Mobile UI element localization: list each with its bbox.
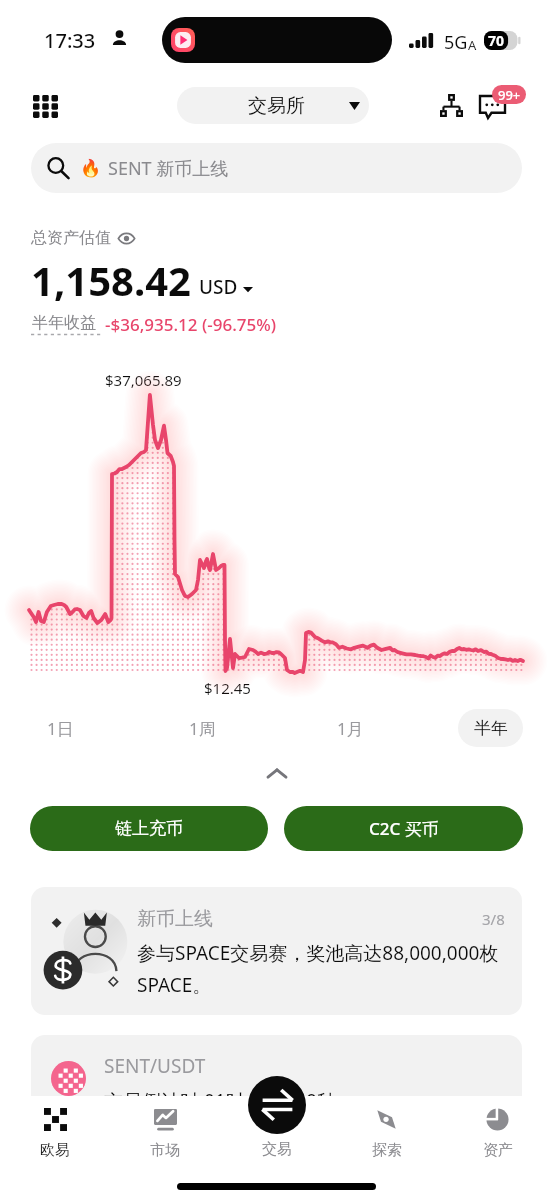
staticText: 半年收益: [32, 313, 96, 333]
staticText: 总资产估值: [31, 228, 111, 248]
staticText: SENT/USDT: [104, 1053, 206, 1079]
button[interactable]: C2C 买币: [284, 806, 523, 851]
button[interactable]: 1月: [324, 709, 376, 747]
button[interactable]: Collapse: [255, 762, 299, 784]
button[interactable]: Hierarchy: [432, 86, 471, 125]
staticText: 新币上线: [137, 907, 213, 931]
staticText: 1,158.42: [31, 253, 191, 307]
staticText: $12.45: [204, 678, 251, 698]
staticText: 资产: [483, 1141, 513, 1160]
button[interactable]: 1日: [34, 709, 86, 747]
staticText: $37,065.89: [105, 370, 182, 390]
staticText: 市场: [150, 1141, 180, 1160]
button[interactable]: Apps: [25, 86, 65, 126]
staticText: 1月: [337, 717, 364, 740]
button[interactable]: 1周: [176, 709, 228, 747]
button[interactable]: 探索: [331, 1096, 442, 1160]
button[interactable]: 新币上线: [31, 887, 522, 1015]
staticText: 1日: [47, 717, 74, 740]
staticText: 参与SPACE交易赛，奖池高达88,000,000枚 SPACE。: [137, 940, 509, 997]
staticText: 17:33: [44, 27, 96, 54]
button[interactable]: 半年收益: [31, 313, 277, 336]
staticText: 🔥: [80, 158, 102, 178]
staticText: 1周: [189, 717, 216, 740]
button[interactable]: 欧易: [0, 1096, 110, 1160]
staticText: C2C 买币: [369, 817, 439, 840]
button[interactable]: 总资产估值: [31, 228, 135, 248]
button[interactable]: 半年: [458, 709, 523, 747]
staticText: USD: [199, 274, 238, 300]
staticText: 欧易: [40, 1141, 70, 1160]
button[interactable]: 链上充币: [30, 806, 268, 851]
staticText: 5G: [444, 30, 468, 55]
button[interactable]: 交易: [248, 1076, 306, 1134]
staticText: 探索: [372, 1141, 402, 1160]
button[interactable]: 市场: [110, 1096, 220, 1160]
staticText: 链上充币: [115, 818, 183, 839]
staticText: 交易所: [248, 94, 305, 118]
staticText: 3/8: [482, 909, 505, 929]
staticText: 交易: [262, 1140, 292, 1159]
staticText: A: [468, 36, 477, 54]
staticText: 70: [488, 31, 505, 50]
button[interactable]: 🔥: [31, 143, 522, 193]
button[interactable]: SENT/USDT: [31, 1035, 522, 1145]
staticText: -$36,935.12 (-96.75%): [105, 313, 277, 336]
staticText: 半年: [474, 718, 508, 739]
button[interactable]: Messages: [472, 88, 512, 128]
button[interactable]: 交易所: [177, 87, 369, 124]
staticText: SENT 新币上线: [108, 156, 229, 181]
staticText: 交易倒计时 01时 24分 09秒: [104, 1088, 337, 1114]
staticText: 99+: [498, 86, 521, 104]
button[interactable]: 资产: [442, 1096, 553, 1160]
